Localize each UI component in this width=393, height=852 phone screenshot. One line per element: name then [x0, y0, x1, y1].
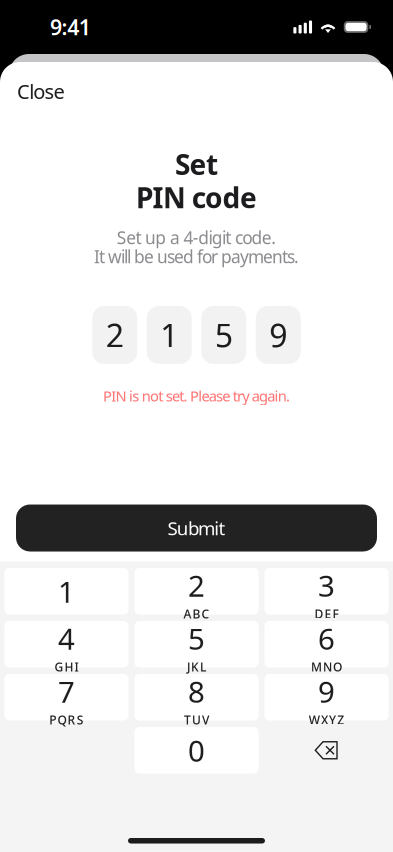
button[interactable]: 1: [4, 568, 128, 614]
button[interactable]: 3: [264, 568, 388, 614]
staticText: 2: [106, 314, 124, 356]
staticText: 3: [318, 566, 335, 605]
staticText: Close: [17, 78, 65, 105]
staticText: 8: [188, 672, 205, 711]
button[interactable]: 4: [4, 621, 128, 667]
button[interactable]: Submit: [16, 504, 377, 551]
staticText: 9: [269, 314, 287, 356]
button[interactable]: 2: [134, 568, 258, 614]
button[interactable]: 6: [264, 621, 388, 667]
staticText: GHI: [54, 659, 79, 675]
staticText: 2: [188, 566, 205, 605]
staticText: 0: [188, 731, 205, 770]
button[interactable]: 7: [4, 674, 128, 720]
staticText: WXYZ: [309, 712, 344, 728]
staticText: It will be used for payments.: [94, 245, 299, 268]
staticText: 7: [58, 672, 75, 711]
staticText: PQRS: [49, 712, 84, 728]
staticText: 5: [215, 314, 233, 356]
button[interactable]: 8: [134, 674, 258, 720]
staticText: 1: [58, 572, 75, 611]
staticText: Submit: [167, 516, 225, 540]
button[interactable]: 0: [134, 727, 258, 773]
staticText: Set: [175, 146, 218, 183]
button[interactable]: Delete: [264, 727, 388, 773]
staticText: 5: [188, 619, 205, 658]
staticText: 4: [58, 619, 75, 658]
staticText: DEF: [314, 606, 339, 622]
staticText: Set up a 4-digit code.: [117, 226, 276, 249]
button[interactable]: 9: [264, 674, 388, 720]
staticText: MNO: [311, 659, 342, 675]
staticText: 6: [318, 619, 335, 658]
staticText: 1: [160, 314, 178, 356]
staticText: ABC: [183, 606, 210, 622]
staticText: PIN is not set. Please try again.: [103, 386, 290, 405]
staticText: TUV: [184, 712, 209, 728]
button[interactable]: 5: [134, 621, 258, 667]
staticText: 9: [318, 672, 335, 711]
staticText: JKL: [187, 659, 206, 675]
staticText: PIN code: [136, 179, 257, 216]
button[interactable]: Close: [0, 68, 82, 115]
staticText: 9:41: [50, 13, 91, 41]
